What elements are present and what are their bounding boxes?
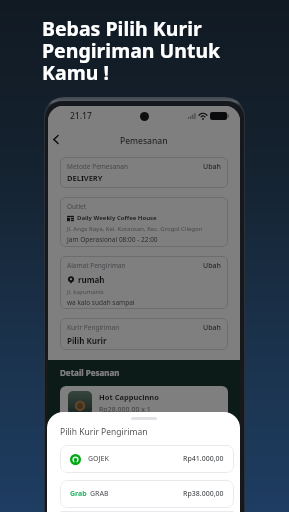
staticText: Ubah	[203, 323, 221, 333]
staticText: Hot Cappucinno	[99, 392, 159, 402]
staticText: 21.17	[70, 110, 92, 122]
staticText: Kurir Pengiriman	[67, 323, 203, 332]
staticText: GRAB	[90, 489, 183, 499]
staticText: Rp41.000,00	[183, 454, 224, 464]
staticText: jl. kayumanis	[67, 288, 104, 296]
staticText: Pilih Kurir	[67, 335, 107, 346]
staticText: Outlet	[67, 202, 87, 211]
staticText: Alamat Pengiriman	[67, 261, 203, 270]
button[interactable]: Grab	[60, 480, 234, 508]
button[interactable]: Back	[49, 132, 63, 146]
button[interactable]: GOJEK	[60, 445, 234, 473]
button[interactable]: Alamat Pengiriman	[60, 256, 228, 309]
staticText: Metode Pemesanan	[67, 162, 128, 171]
button[interactable]: Metode Pemesanan	[60, 157, 228, 188]
staticText: Jl. Angs Raya, Kel. Kotaosan, Kec. Grogo…	[67, 225, 203, 233]
staticText: Bebas Pilih Kurir Pengiriman Untuk Kamu …	[42, 15, 221, 86]
staticText: Ubah	[203, 162, 221, 172]
staticText: GOJEK	[88, 454, 183, 464]
staticText: Ubah	[203, 261, 221, 271]
staticText: Pilih Kurir Pengiriman	[60, 426, 148, 438]
staticText: Rp28.000,00 x 1	[99, 405, 151, 415]
button[interactable]: Outlet	[60, 197, 228, 247]
staticText: Grab	[70, 489, 87, 499]
staticText: wa kalo sudah sampai	[67, 298, 135, 307]
staticText: rumah	[78, 274, 105, 285]
staticText: Detail Pesanan	[60, 367, 120, 378]
staticText: Jam Operasional 08:00 - 22:00	[67, 235, 158, 244]
staticText: Pemesanan	[120, 135, 168, 147]
staticText: Daily Weekly Coffee House	[77, 214, 157, 222]
button[interactable]: Kurir Pengiriman	[60, 318, 228, 350]
staticText: DELIVERY	[67, 173, 103, 183]
staticText: Rp38.000,00	[183, 489, 224, 499]
